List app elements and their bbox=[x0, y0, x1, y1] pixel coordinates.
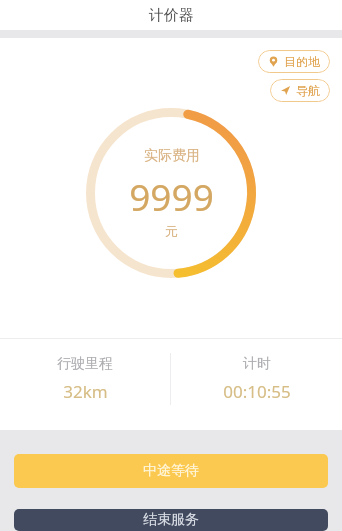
button[interactable]: 中途等待 bbox=[14, 454, 328, 488]
staticText: 元 bbox=[165, 223, 178, 239]
staticText: 9999 bbox=[129, 171, 214, 221]
staticText: 中途等待 bbox=[143, 462, 199, 480]
button[interactable]: 行驶里程 bbox=[0, 355, 170, 403]
button[interactable]: 目的地 bbox=[258, 50, 330, 73]
staticText: 计价器 bbox=[149, 6, 194, 25]
button[interactable]: 计时 bbox=[171, 355, 342, 403]
button[interactable]: 结束服务 bbox=[14, 509, 328, 531]
staticText: 行驶里程 bbox=[57, 355, 113, 373]
staticText: 导航 bbox=[296, 83, 320, 98]
staticText: 实际费用 bbox=[144, 147, 200, 165]
other: 目的地 bbox=[268, 56, 279, 67]
other: 导航 bbox=[280, 85, 291, 96]
staticText: 32km bbox=[63, 380, 108, 403]
staticText: 目的地 bbox=[284, 54, 320, 69]
staticText: 结束服务 bbox=[143, 511, 199, 529]
button[interactable]: 导航 bbox=[270, 79, 330, 102]
staticText: 00:10:55 bbox=[223, 380, 291, 403]
staticText: 计时 bbox=[243, 355, 271, 373]
